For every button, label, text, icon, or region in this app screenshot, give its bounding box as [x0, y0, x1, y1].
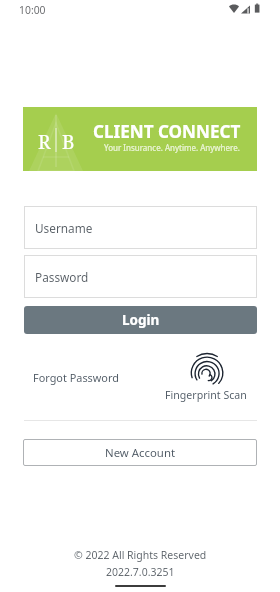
- staticText: CLIENT CONNECT: [93, 120, 241, 143]
- button[interactable]: Login: [24, 306, 257, 334]
- staticText: R: [38, 129, 51, 155]
- staticText: B: [62, 129, 75, 155]
- button[interactable]: Fingerprint Scan: [158, 346, 254, 404]
- staticText: Password: [35, 269, 89, 285]
- button[interactable]: Forgot Password: [24, 364, 124, 390]
- staticText: 10:00: [19, 3, 46, 17]
- button[interactable]: New Account: [23, 439, 257, 466]
- staticText: © 2022 All Rights Reserved: [74, 548, 207, 562]
- staticText: Your Insurance. Anytime. Anywhere.: [104, 142, 240, 153]
- staticText: New Account: [105, 445, 176, 461]
- staticText: Username: [35, 220, 93, 236]
- button[interactable]: Username: [24, 206, 257, 249]
- button[interactable]: Password: [24, 255, 257, 298]
- staticText: Login: [122, 311, 160, 329]
- staticText: 2022.7.0.3251: [106, 565, 175, 579]
- staticText: Forgot Password: [33, 370, 119, 385]
- staticText: Fingerprint Scan: [165, 388, 247, 402]
